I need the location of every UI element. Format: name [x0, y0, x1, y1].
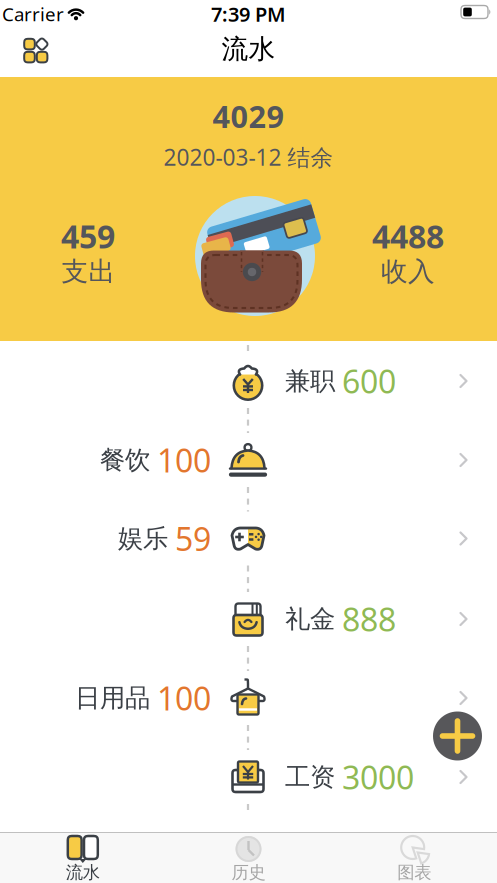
button[interactable]: 工资 — [0, 741, 497, 813]
staticText: 59 — [175, 517, 211, 560]
staticText: 支出 — [61, 255, 115, 288]
staticText: 2020-03-12 结余 — [163, 142, 333, 172]
staticText: 7:39 PM — [211, 1, 286, 27]
staticText: 娱乐 — [118, 523, 168, 554]
staticText: 600 — [342, 360, 396, 402]
button[interactable]: 流水 — [0, 832, 166, 883]
staticText: 888 — [342, 598, 396, 640]
staticText: 收入 — [381, 255, 435, 288]
staticText: 兼职 — [285, 365, 335, 396]
staticText: 工资 — [285, 761, 335, 792]
button[interactable]: 娱乐 — [0, 502, 497, 574]
staticText: 4488 — [372, 215, 444, 257]
staticText: 餐饮 — [100, 444, 150, 475]
button[interactable]: 记一笔 — [429, 708, 485, 764]
button[interactable]: 餐饮 — [0, 424, 497, 496]
button[interactable]: 分类 — [0, 0, 56, 77]
button[interactable]: 兼职 — [0, 345, 497, 417]
staticText: 历史 — [231, 862, 265, 883]
staticText: 100 — [157, 677, 211, 719]
staticText: 礼金 — [285, 603, 335, 634]
staticText: 图表 — [397, 862, 431, 883]
staticText: 3000 — [342, 756, 414, 798]
staticText: 流水 — [66, 862, 100, 883]
staticText: 100 — [157, 439, 211, 481]
staticText: Carrier — [2, 2, 64, 26]
staticText: 459 — [61, 215, 115, 257]
staticText: 流水 — [221, 33, 275, 65]
button[interactable]: 礼金 — [0, 583, 497, 655]
staticText: 4029 — [212, 96, 284, 136]
button[interactable]: 图表 — [331, 832, 497, 883]
staticText: 日用品 — [75, 682, 150, 713]
button[interactable]: 日用品 — [0, 662, 497, 734]
button[interactable]: 历史 — [166, 832, 331, 883]
